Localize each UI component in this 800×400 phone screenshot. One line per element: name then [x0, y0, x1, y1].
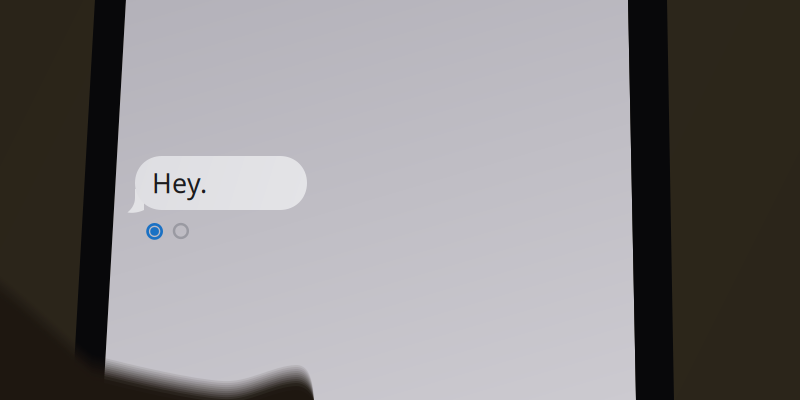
- staticText: Hey.: [152, 165, 207, 201]
- button[interactable]: Screen effect: [170, 220, 192, 242]
- button[interactable]: Hey.: [135, 156, 307, 210]
- button[interactable]: Bubble effect: [144, 220, 166, 242]
